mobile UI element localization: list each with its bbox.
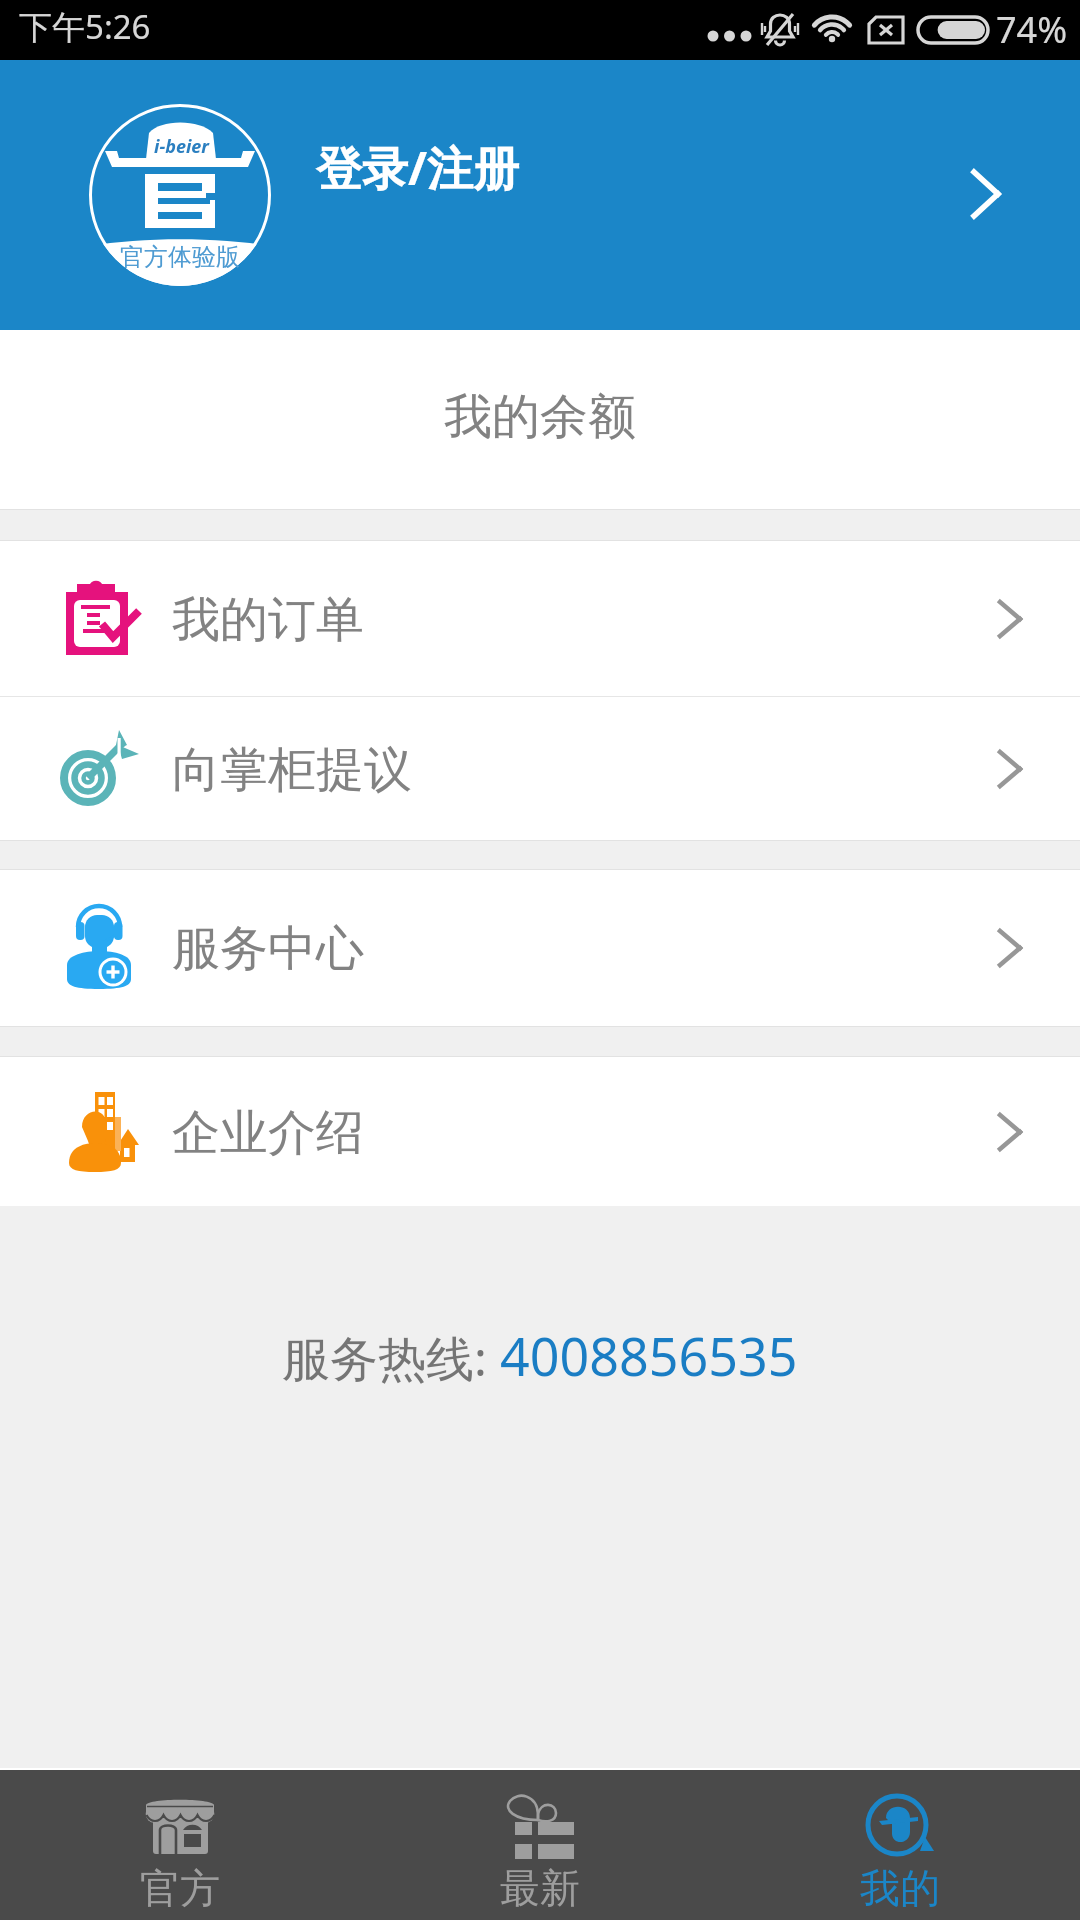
- staticText: 服务热线:: [282, 1325, 500, 1391]
- staticText: 官方体验版: [120, 242, 240, 272]
- staticText: i-beier: [154, 134, 209, 159]
- button[interactable]: 我的: [720, 1770, 1080, 1920]
- button[interactable]: i-beier: [0, 60, 1080, 330]
- staticText: 最新: [500, 1863, 580, 1913]
- staticText: 企业介绍: [172, 1103, 364, 1163]
- staticText: 我的余额: [444, 387, 636, 447]
- staticText: 向掌柜提议: [172, 740, 412, 800]
- staticText: 服务中心: [172, 919, 364, 979]
- staticText: 我的订单: [172, 590, 364, 650]
- other: 登录/注册: [951, 159, 1021, 229]
- staticText: 74%: [996, 5, 1068, 54]
- staticText: 下午5:26: [19, 4, 151, 49]
- staticText: 我的: [860, 1863, 940, 1913]
- button[interactable]: 我的余额: [0, 330, 1080, 509]
- staticText: 官方: [140, 1863, 220, 1913]
- button[interactable]: 服务热线:: [0, 1320, 1080, 1391]
- button[interactable]: 企业介绍: [0, 1057, 1080, 1206]
- button[interactable]: 向掌柜提议: [0, 697, 1080, 840]
- button[interactable]: 官方: [0, 1770, 360, 1920]
- button[interactable]: 最新: [360, 1770, 720, 1920]
- button[interactable]: 服务中心: [0, 870, 1080, 1026]
- staticText: 4008856535: [500, 1320, 798, 1391]
- staticText: 登录/注册: [316, 136, 520, 199]
- button[interactable]: 我的订单: [0, 541, 1080, 696]
